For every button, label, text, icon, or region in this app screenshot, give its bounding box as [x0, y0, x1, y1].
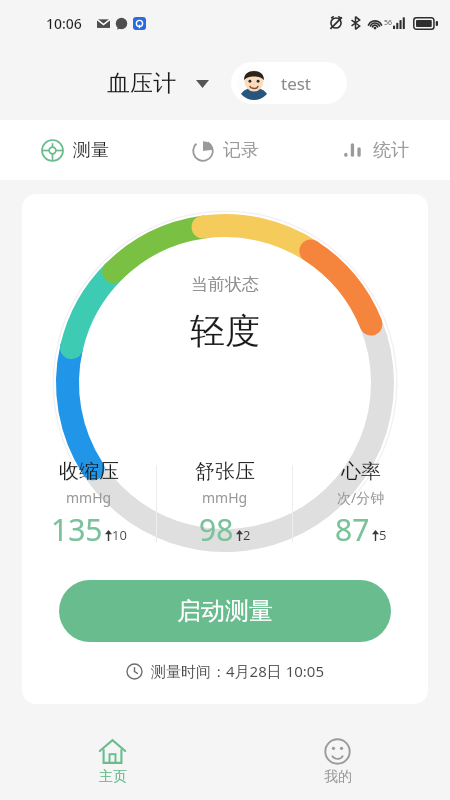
button[interactable]: 舒张压	[157, 459, 292, 550]
staticText: 87	[335, 509, 370, 550]
button[interactable]: 收缩压	[22, 459, 156, 550]
button[interactable]: 测量	[0, 120, 150, 180]
staticText: 10	[112, 526, 127, 544]
button[interactable]: 我的	[225, 724, 450, 800]
staticText: 心率	[341, 459, 381, 484]
staticText: 舒张压	[195, 459, 255, 484]
staticText: 轻度	[190, 309, 260, 353]
staticText: 主页	[99, 768, 127, 786]
staticText: mmHg	[66, 488, 112, 507]
staticText: 5	[379, 526, 387, 544]
staticText: 98	[199, 509, 234, 550]
button[interactable]: 心率	[293, 459, 428, 550]
button[interactable]: 血压计	[103, 65, 213, 102]
button[interactable]: 统计	[300, 120, 450, 180]
staticText: 测量	[73, 139, 109, 162]
staticText: 我的	[324, 768, 352, 786]
staticText: test	[281, 72, 312, 95]
staticText: 启动测量	[177, 596, 273, 626]
button[interactable]: test	[231, 62, 347, 104]
staticText: 当前状态	[191, 274, 259, 295]
staticText: mmHg	[202, 488, 248, 507]
staticText: 56	[384, 18, 393, 28]
staticText: 收缩压	[59, 459, 119, 484]
button[interactable]: 记录	[150, 120, 300, 180]
staticText: 测量时间：4月28日 10:05	[151, 661, 324, 681]
button[interactable]: 主页	[0, 724, 225, 800]
staticText: 统计	[373, 139, 409, 162]
staticText: 血压计	[107, 69, 176, 98]
staticText: 2	[243, 526, 251, 544]
staticText: 次/分钟	[337, 488, 385, 507]
button[interactable]: 启动测量	[59, 580, 391, 642]
staticText: 记录	[223, 139, 259, 162]
staticText: 135	[51, 509, 103, 550]
staticText: 10:06	[46, 14, 82, 33]
